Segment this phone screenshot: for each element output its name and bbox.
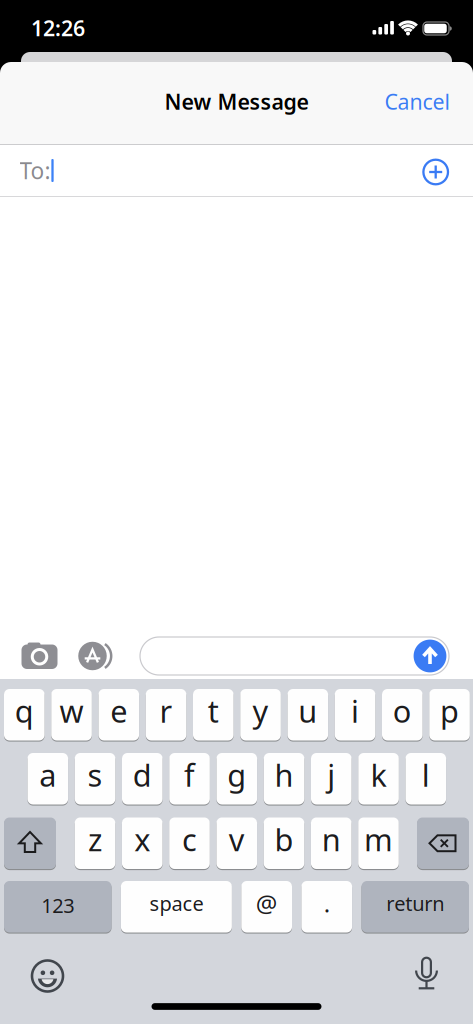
button[interactable]: Cancel: [384, 87, 450, 116]
staticText: New Message: [164, 87, 308, 116]
staticText: a: [39, 754, 56, 795]
staticText: To:: [19, 155, 50, 185]
staticText: 123: [41, 892, 74, 919]
button[interactable]: m: [358, 817, 399, 869]
button[interactable]: r: [146, 689, 186, 740]
staticText: u: [298, 690, 317, 731]
button[interactable]: z: [75, 817, 115, 869]
button[interactable]: f: [169, 753, 210, 804]
button[interactable]: return: [361, 881, 469, 932]
button[interactable]: space: [121, 881, 232, 932]
button[interactable]: c: [169, 817, 210, 869]
button[interactable]: [21, 642, 57, 669]
staticText: o: [393, 690, 412, 731]
staticText: f: [184, 754, 195, 795]
button[interactable]: [411, 957, 441, 993]
staticText: s: [87, 754, 102, 795]
staticText: j: [327, 754, 335, 795]
button[interactable]: [140, 637, 449, 675]
button[interactable]: u: [287, 689, 328, 740]
staticText: e: [110, 690, 127, 731]
staticText: p: [440, 690, 459, 731]
button[interactable]: e: [98, 689, 139, 740]
button[interactable]: h: [264, 753, 304, 804]
button[interactable]: To:: [0, 145, 473, 196]
button[interactable]: k: [358, 753, 399, 804]
staticText: r: [160, 690, 173, 731]
staticText: c: [182, 819, 197, 860]
button[interactable]: o: [382, 689, 423, 740]
staticText: l: [422, 754, 430, 795]
button[interactable]: 123: [4, 881, 111, 932]
staticText: x: [134, 819, 150, 860]
button[interactable]: j: [311, 753, 352, 804]
staticText: t: [208, 690, 219, 731]
staticText: d: [133, 754, 152, 795]
staticText: y: [253, 690, 269, 731]
button[interactable]: [32, 960, 63, 991]
button[interactable]: a: [27, 753, 68, 804]
staticText: return: [386, 890, 444, 917]
button[interactable]: v: [216, 817, 257, 869]
button[interactable]: d: [122, 753, 163, 804]
button[interactable]: i: [335, 689, 375, 740]
staticText: n: [322, 819, 341, 860]
staticText: b: [274, 819, 293, 860]
button[interactable]: [4, 817, 56, 869]
button[interactable]: [414, 640, 446, 672]
staticText: w: [59, 690, 83, 731]
staticText: q: [15, 690, 34, 731]
staticText: k: [371, 754, 387, 795]
button[interactable]: n: [311, 817, 351, 869]
button[interactable]: p: [429, 689, 470, 740]
button[interactable]: s: [75, 753, 115, 804]
staticText: .: [324, 887, 330, 919]
staticText: h: [275, 754, 294, 795]
staticText: 12:26: [31, 14, 85, 42]
staticText: g: [227, 754, 246, 795]
button[interactable]: @: [241, 881, 292, 932]
button[interactable]: [420, 157, 451, 187]
button[interactable]: t: [193, 689, 234, 740]
button[interactable]: w: [51, 689, 92, 740]
staticText: v: [229, 819, 245, 860]
staticText: z: [88, 819, 102, 860]
button[interactable]: y: [240, 689, 281, 740]
button[interactable]: q: [4, 689, 45, 740]
staticText: @: [256, 887, 278, 919]
button[interactable]: b: [264, 817, 304, 869]
button[interactable]: [77, 640, 121, 672]
button[interactable]: x: [122, 817, 163, 869]
button[interactable]: .: [301, 881, 352, 932]
staticText: m: [364, 819, 393, 860]
staticText: space: [149, 890, 203, 917]
button[interactable]: [417, 817, 469, 869]
staticText: i: [351, 690, 359, 731]
button[interactable]: g: [216, 753, 257, 804]
button[interactable]: l: [405, 753, 446, 804]
staticText: Cancel: [384, 87, 450, 116]
